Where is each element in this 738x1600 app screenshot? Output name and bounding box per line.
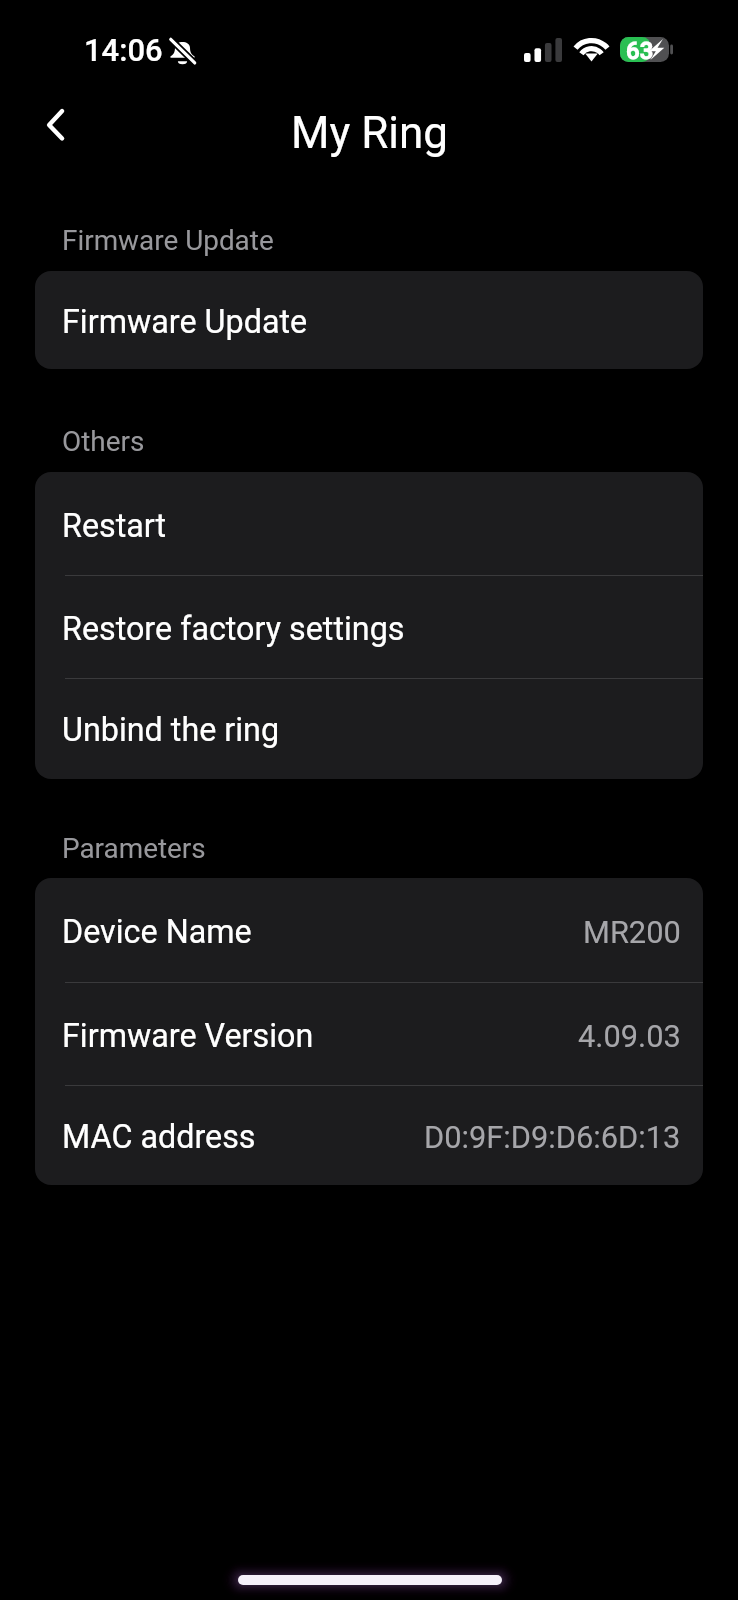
staticText: 14:06 xyxy=(84,32,163,68)
staticText: Device Name xyxy=(62,913,252,951)
staticText: MR200 xyxy=(583,914,681,950)
staticText: Firmware Version xyxy=(62,1017,314,1055)
staticText: 63 xyxy=(626,37,654,62)
button[interactable]: Firmware Version xyxy=(35,982,703,1085)
staticText: Parameters xyxy=(62,832,206,865)
button[interactable]: Restore factory settings xyxy=(35,575,703,678)
staticText: MAC address xyxy=(62,1118,256,1156)
button[interactable]: MAC address xyxy=(35,1085,703,1185)
button[interactable]: Unbind the ring xyxy=(35,678,703,778)
button[interactable]: Restart xyxy=(35,472,703,576)
staticText: 4.09.03 xyxy=(578,1018,681,1054)
staticText: Others xyxy=(62,425,145,458)
staticText: Restart xyxy=(62,507,167,545)
staticText: Unbind the ring xyxy=(62,711,280,749)
staticText: Firmware Update xyxy=(62,224,274,257)
staticText: D0:9F:D9:D6:6D:13 xyxy=(424,1119,681,1155)
staticText: Restore factory settings xyxy=(62,610,405,648)
staticText: My Ring xyxy=(291,107,448,159)
button[interactable]: Device Name xyxy=(35,878,703,982)
button[interactable]: Firmware Update xyxy=(35,271,703,369)
staticText: Firmware Update xyxy=(62,303,308,341)
button[interactable]: Back xyxy=(19,84,79,144)
